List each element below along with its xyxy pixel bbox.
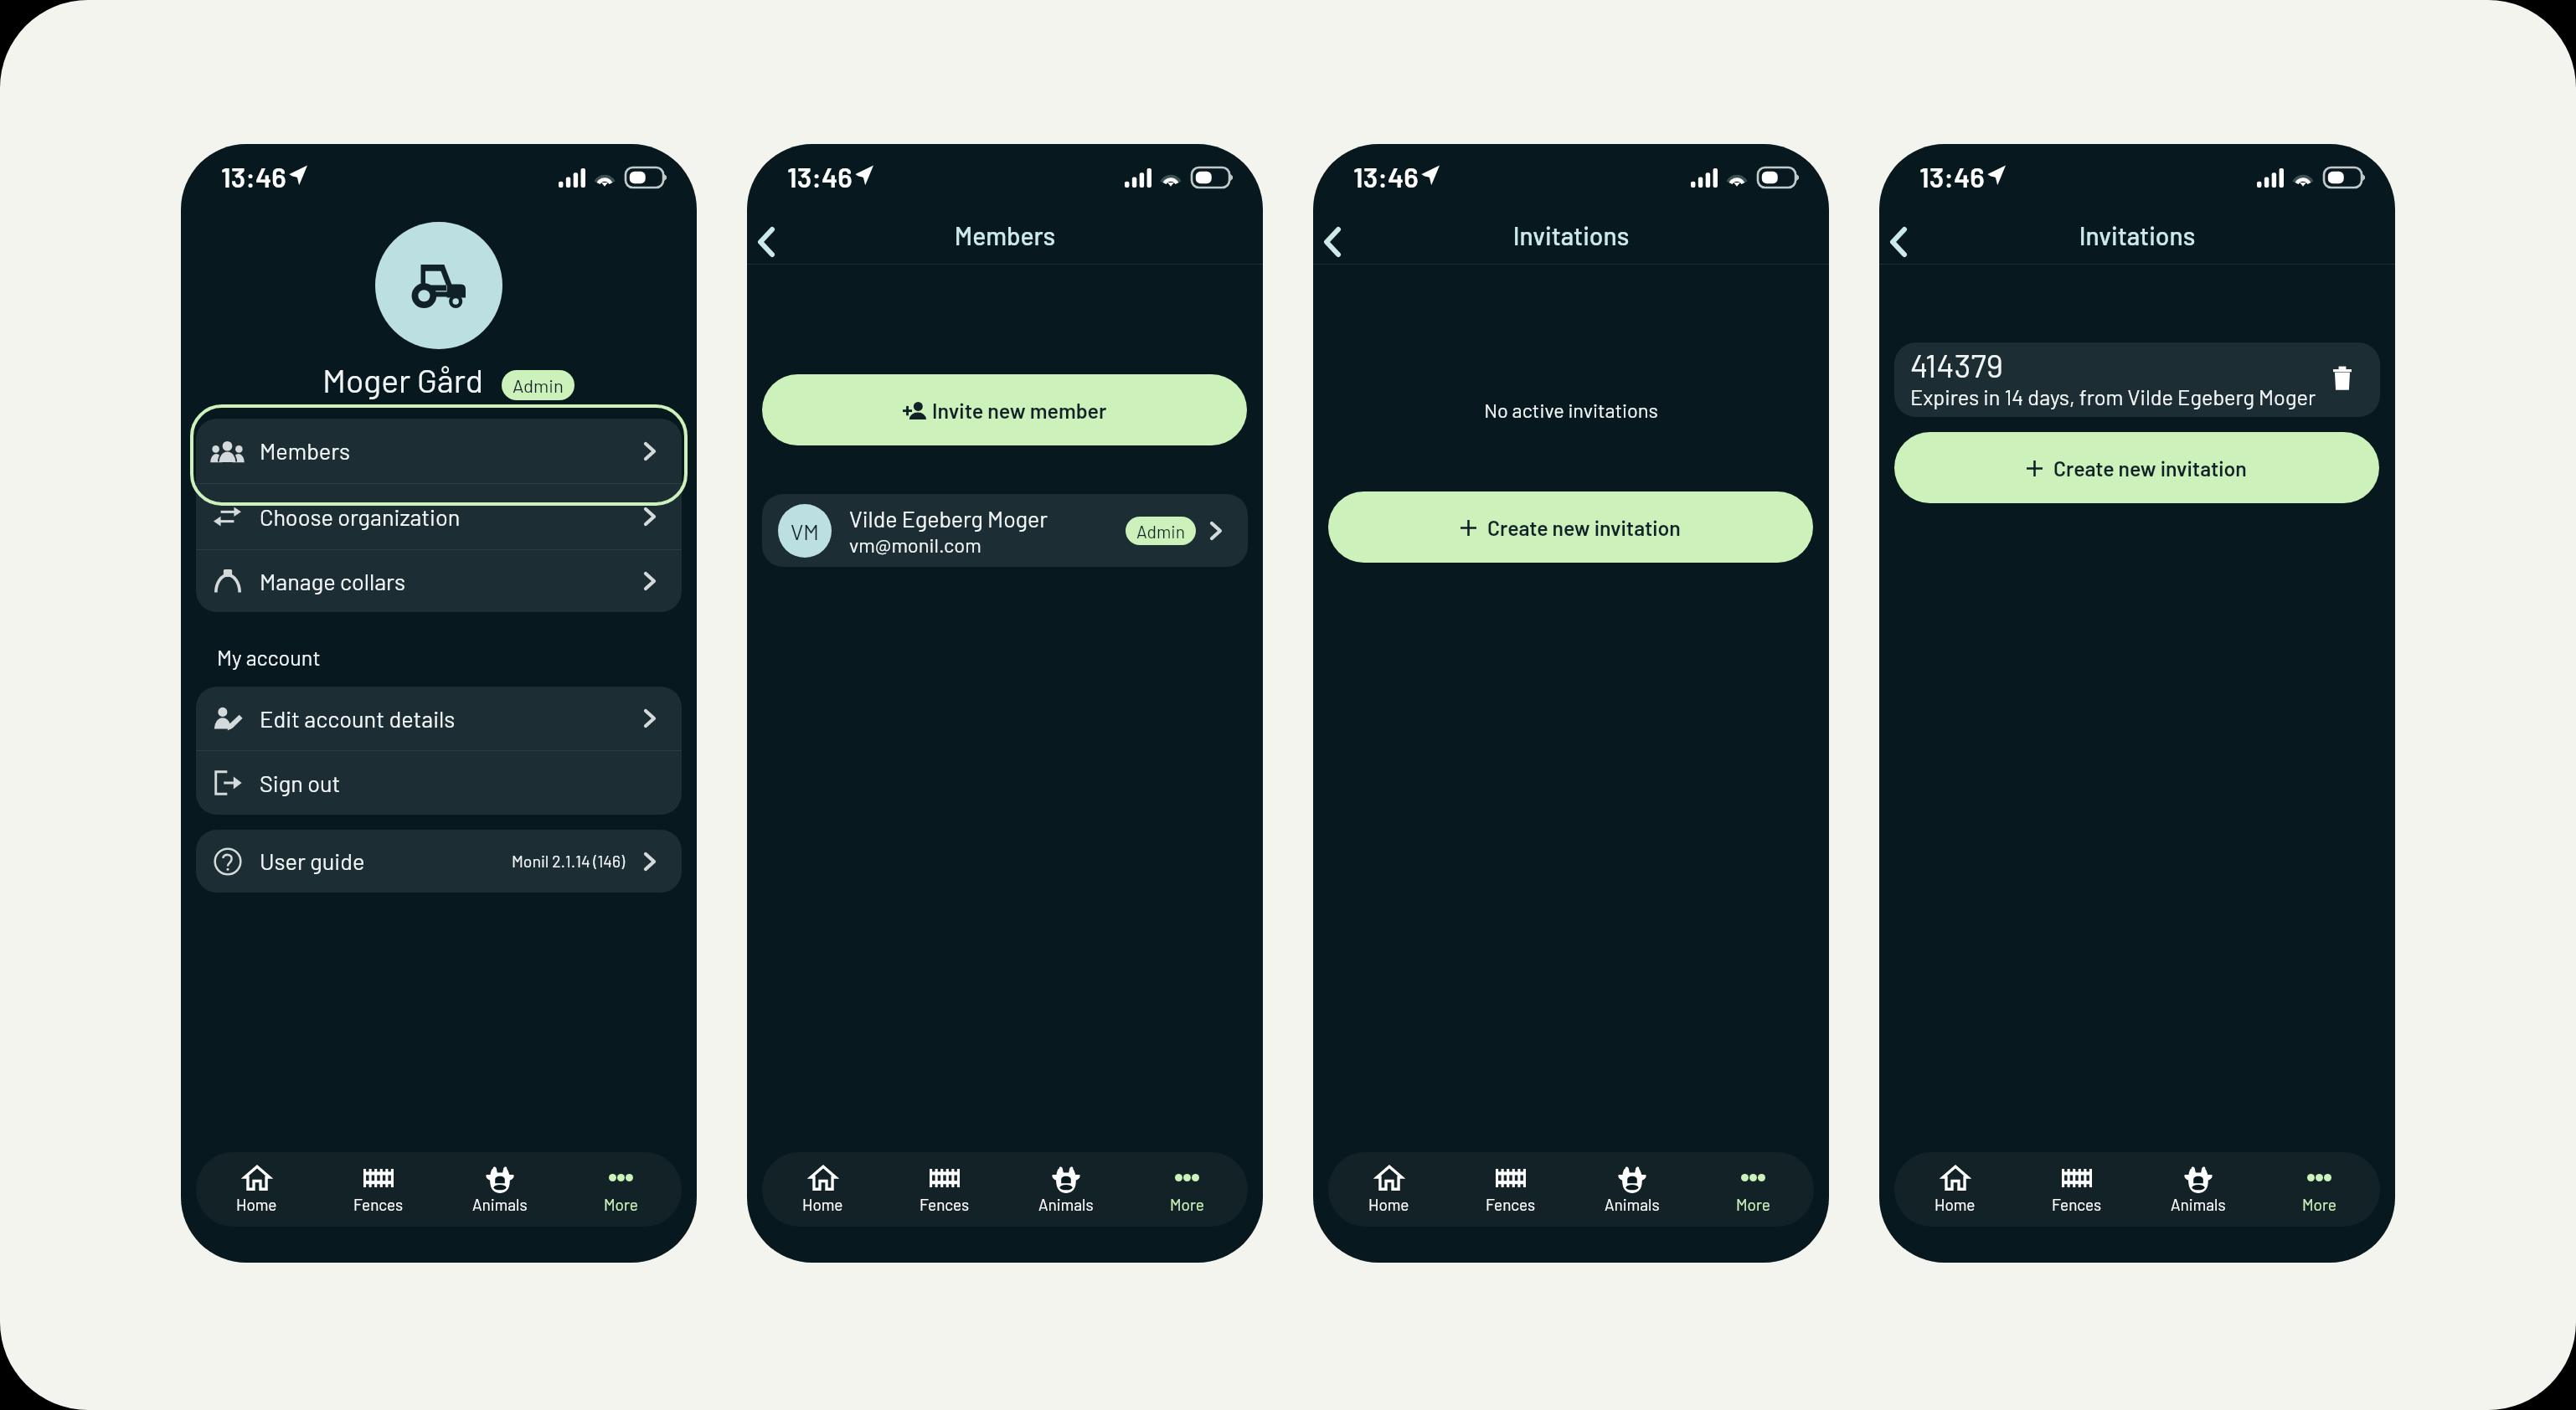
button[interactable]: Fences	[2016, 1152, 2137, 1227]
staticText: Invitations	[1879, 220, 2395, 250]
button[interactable]: Back	[748, 218, 795, 265]
staticText: My account	[217, 645, 321, 670]
staticText: Members	[747, 220, 1263, 250]
button[interactable]: Animals	[2137, 1152, 2259, 1227]
button[interactable]: More	[560, 1152, 682, 1227]
button[interactable]: Choose organization	[196, 484, 682, 549]
staticText: More	[1736, 1195, 1770, 1214]
staticText: VM	[791, 518, 819, 544]
button[interactable]: Members	[196, 419, 682, 483]
staticText: 13:46	[1353, 160, 1419, 193]
button[interactable]: Back	[1880, 218, 1927, 265]
button[interactable]: Animals	[1571, 1152, 1692, 1227]
staticText: No active invitations	[1313, 398, 1829, 421]
staticText: Home	[236, 1195, 277, 1214]
button[interactable]: Fences	[317, 1152, 439, 1227]
button[interactable]: VM	[762, 494, 1248, 567]
staticText: More	[2302, 1195, 2336, 1214]
staticText: Monil 2.1.14 (146)	[512, 852, 626, 871]
staticText: Vilde Egeberg Moger	[849, 505, 1048, 532]
button[interactable]: More	[1126, 1152, 1248, 1227]
staticText: Choose organization	[260, 503, 461, 531]
staticText: Animals	[1605, 1195, 1660, 1214]
button[interactable]: Edit account details	[196, 687, 682, 750]
button[interactable]: Fences	[1450, 1152, 1571, 1227]
staticText: More	[1170, 1195, 1204, 1214]
staticText: Home	[1368, 1195, 1409, 1214]
staticText: Expires in 14 days, from Vilde Egeberg M…	[1910, 384, 2316, 409]
staticText: Invite new member	[932, 398, 1107, 423]
button[interactable]: Delete invitation	[2324, 359, 2361, 396]
staticText: Fences	[353, 1195, 404, 1214]
staticText: Create new invitation	[1487, 515, 1681, 540]
staticText: 13:46	[787, 160, 853, 193]
staticText: Fences	[2052, 1195, 2102, 1214]
staticText: 414379	[1910, 345, 2003, 383]
staticText: Edit account details	[260, 705, 456, 733]
staticText: Sign out	[260, 769, 341, 797]
staticText: Create new invitation	[2053, 455, 2247, 481]
staticText: Animals	[1038, 1195, 1094, 1214]
button[interactable]: Animals	[1005, 1152, 1126, 1227]
button[interactable]: Home	[1328, 1152, 1450, 1227]
staticText: User guide	[260, 847, 365, 875]
button[interactable]: Home	[1894, 1152, 2016, 1227]
staticText: Moger Gård	[322, 360, 484, 399]
button[interactable]: Home	[762, 1152, 884, 1227]
button[interactable]: More	[1692, 1152, 1814, 1227]
button[interactable]: Sign out	[196, 751, 682, 815]
staticText: Animals	[472, 1195, 528, 1214]
staticText: Manage collars	[260, 568, 405, 595]
button[interactable]: More	[2259, 1152, 2380, 1227]
button[interactable]: Fences	[884, 1152, 1005, 1227]
staticText: 13:46	[1919, 160, 1985, 193]
staticText: Fences	[1486, 1195, 1536, 1214]
button[interactable]: Home	[196, 1152, 317, 1227]
button[interactable]: Create new invitation	[1894, 432, 2379, 503]
staticText: Home	[802, 1195, 843, 1214]
staticText: Home	[1935, 1195, 1976, 1214]
staticText: Admin	[1136, 521, 1185, 542]
staticText: Animals	[2171, 1195, 2226, 1214]
staticText: Fences	[920, 1195, 970, 1214]
staticText: Members	[260, 437, 351, 465]
staticText: More	[604, 1195, 638, 1214]
button[interactable]: User guide	[196, 830, 682, 893]
button[interactable]: Create new invitation	[1328, 491, 1813, 563]
button[interactable]: Invite new member	[762, 374, 1247, 445]
button[interactable]: Back	[1314, 218, 1361, 265]
staticText: Admin	[513, 374, 564, 396]
button[interactable]: Manage collars	[196, 550, 682, 612]
button[interactable]: Animals	[439, 1152, 560, 1227]
staticText: Invitations	[1313, 220, 1829, 250]
staticText: vm@monil.com	[849, 533, 981, 556]
staticText: 13:46	[221, 160, 286, 193]
